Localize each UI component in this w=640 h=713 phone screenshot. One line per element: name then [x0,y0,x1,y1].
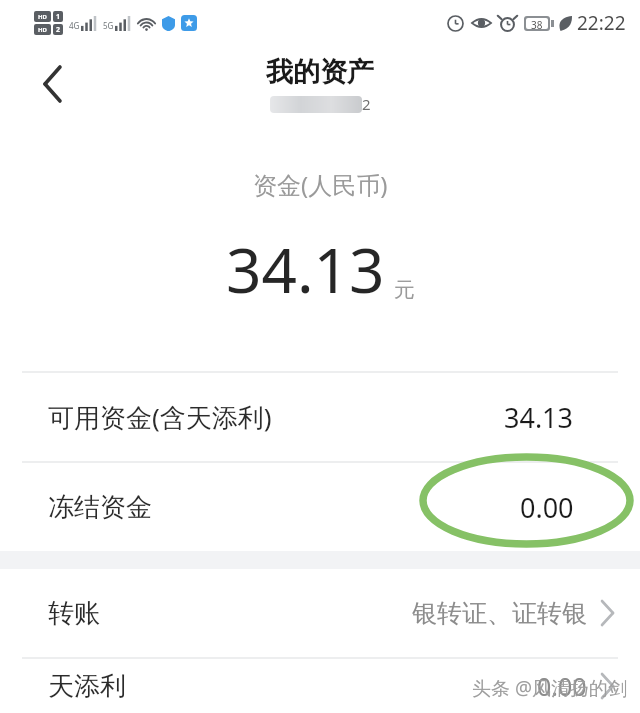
button[interactable]: 转账 [0,569,640,657]
button[interactable]: 冻结资金 [0,463,640,551]
staticText: 22:22 [577,10,626,36]
staticText: 0.00 [537,669,587,703]
staticText: 头条 @风清扬的剑 [472,675,628,701]
staticText: 天添利 [48,670,126,703]
staticText: 34.13 [504,399,574,436]
staticText: 34.13 [226,227,385,311]
staticText: HD [38,13,47,21]
staticText: 银转证、证转银 [412,598,587,629]
staticText: 可用资金(含天添利) [48,399,272,435]
staticText: 1 [56,12,61,22]
staticText: 5G [103,20,114,31]
staticText: 我的资产 [266,55,374,89]
staticText: 38 [531,18,543,29]
staticText: 资金(人民币) [253,168,388,201]
staticText: 2 [362,94,371,114]
button[interactable]: 天添利 [0,659,640,713]
staticText: HD [38,26,47,34]
staticText: 元 [394,277,415,303]
button[interactable]: 可用资金(含天添利) [0,373,640,461]
staticText: 0.00 [520,489,574,526]
staticText: 2 [56,25,61,35]
button[interactable]: Back [22,53,84,115]
staticText: 4G [69,20,80,31]
staticText: 转账 [48,597,100,630]
staticText: 冻结资金 [48,491,152,524]
